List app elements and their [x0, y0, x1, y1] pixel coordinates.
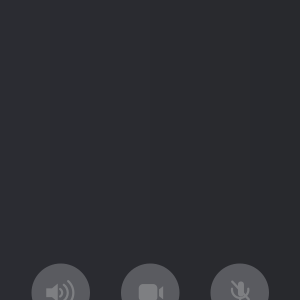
button[interactable]: Camera: [121, 263, 179, 300]
button[interactable]: Mute: [210, 263, 269, 300]
button[interactable]: Speaker: [31, 263, 90, 300]
